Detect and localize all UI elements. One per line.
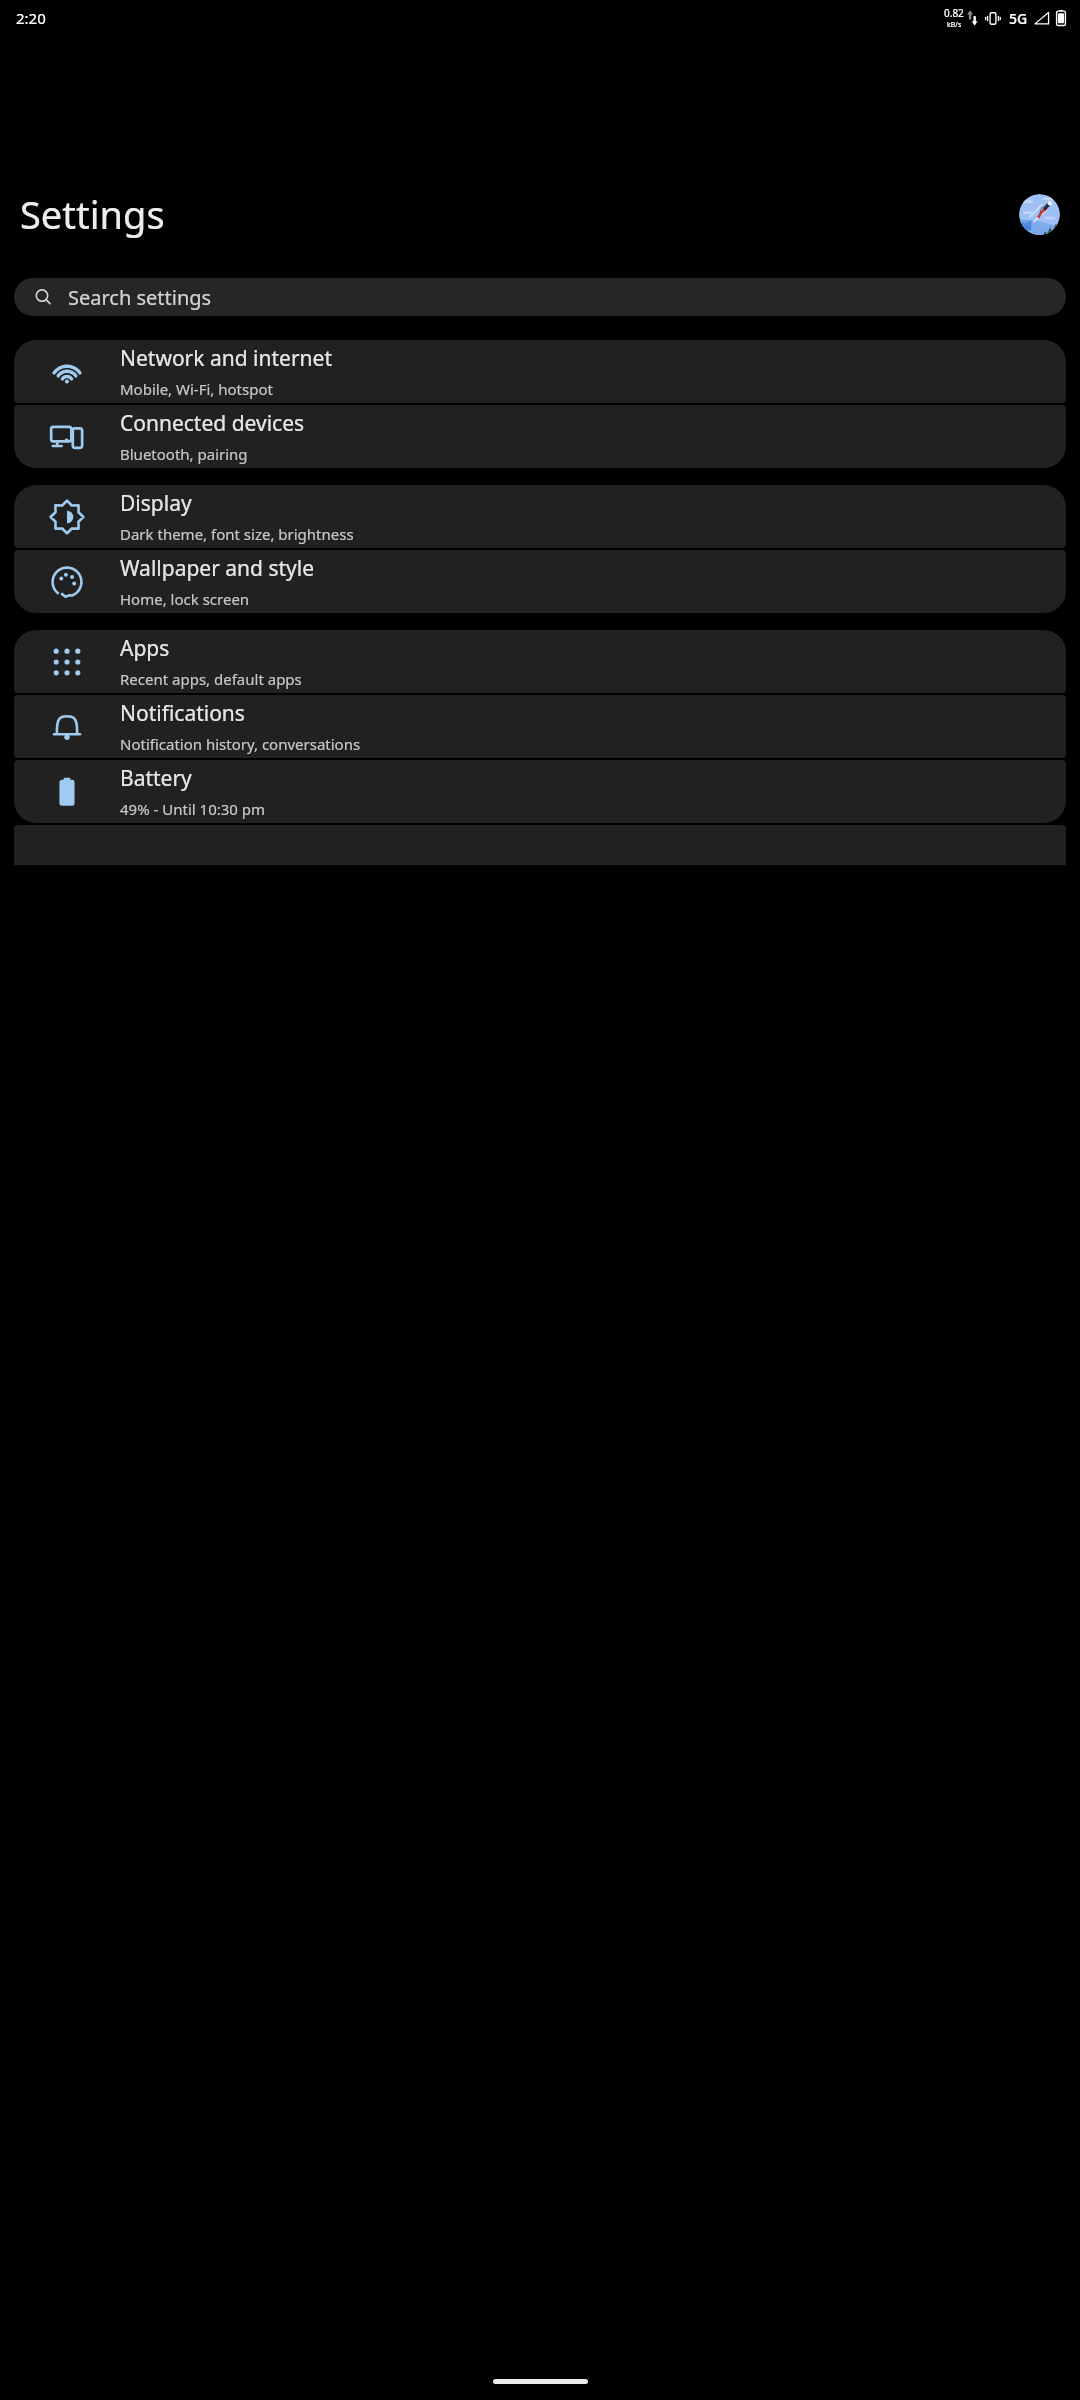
staticText: Battery [120, 764, 192, 793]
staticText: 49% - Until 10:30 pm [120, 799, 266, 819]
button[interactable]: Wallpaper and style [14, 550, 1066, 613]
staticText: Search settings [68, 284, 212, 311]
staticText: Apps [120, 634, 170, 663]
button[interactable]: Notifications [14, 695, 1066, 758]
button[interactable]: Connected devices [14, 405, 1066, 468]
button[interactable]: Network and internet [14, 340, 1066, 403]
button[interactable]: Search settings [14, 278, 1066, 316]
staticText: Connected devices [120, 409, 305, 438]
staticText: Dark theme, font size, brightness [120, 524, 354, 544]
staticText: Recent apps, default apps [120, 669, 302, 689]
staticText: Home, lock screen [120, 589, 250, 609]
staticText: Mobile, Wi-Fi, hotspot [120, 379, 273, 399]
button[interactable]: Battery [14, 760, 1066, 823]
staticText: 2:20 [16, 8, 46, 28]
staticText: 0.82 [944, 6, 964, 20]
staticText: Display [120, 489, 192, 518]
staticText: Wallpaper and style [120, 554, 315, 583]
staticText: Settings [20, 188, 165, 240]
button[interactable]: Apps [14, 630, 1066, 693]
button[interactable]: Account avatar [1019, 194, 1060, 235]
staticText: Notifications [120, 699, 245, 728]
staticText: Network and internet [120, 344, 332, 373]
button[interactable]: Display [14, 485, 1066, 548]
staticText: Bluetooth, pairing [120, 444, 248, 464]
staticText: Notification history, conversations [120, 734, 361, 754]
staticText: 5G [1009, 9, 1028, 28]
staticText: kB/s [947, 20, 962, 30]
